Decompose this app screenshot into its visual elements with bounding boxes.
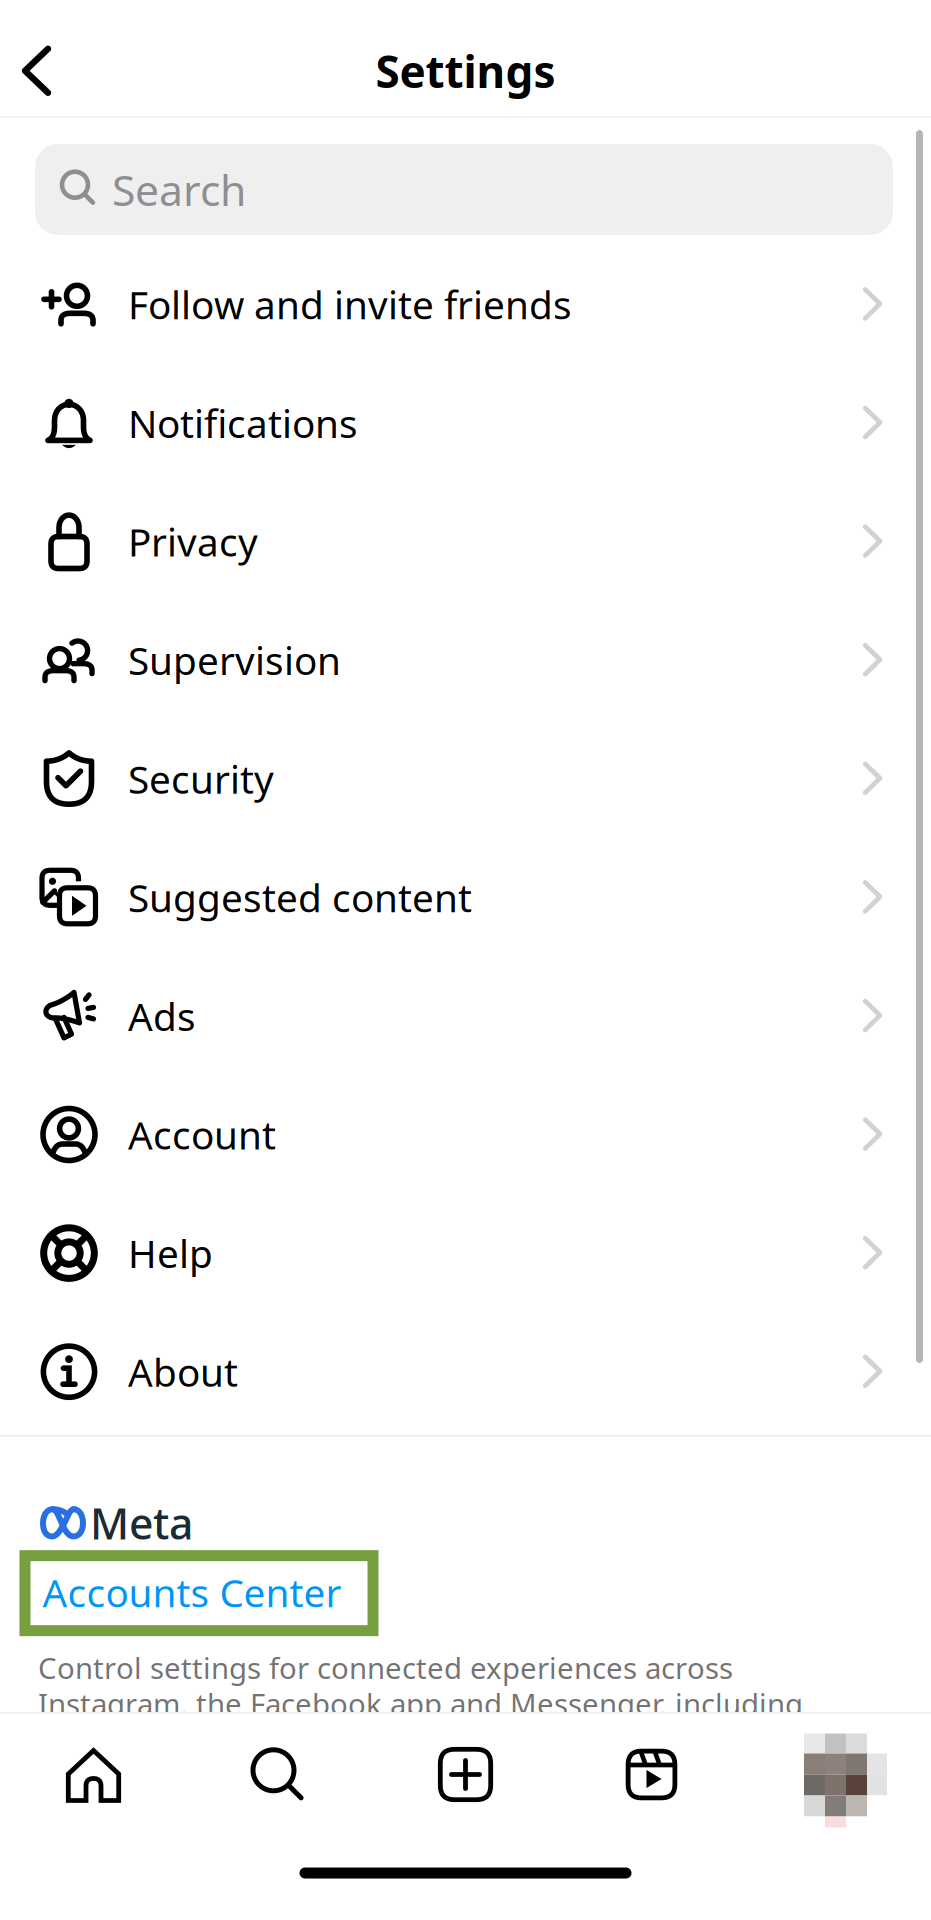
staticText: Help (128, 1227, 213, 1279)
staticText: Follow and invite friends (128, 279, 572, 330)
staticText: Meta (90, 1494, 193, 1551)
button[interactable]: Search (186, 1713, 372, 1825)
staticText: Instagram, the Facebook app and Messenge… (38, 1684, 803, 1723)
button[interactable]: Supervision (0, 601, 931, 719)
button[interactable]: Home (0, 1713, 186, 1825)
button[interactable]: Help (0, 1194, 931, 1312)
staticText: Privacy (128, 516, 258, 567)
staticText: Supervision (128, 634, 341, 686)
button[interactable]: Back (0, 16, 55, 97)
button[interactable]: Create (372, 1713, 558, 1825)
button[interactable]: Reels (558, 1713, 744, 1825)
button[interactable]: Follow and invite friends (0, 245, 931, 364)
button[interactable]: About (0, 1312, 931, 1431)
staticText: Account (128, 1109, 276, 1160)
staticText: Ads (128, 990, 196, 1041)
button[interactable]: Profile (744, 1713, 930, 1825)
staticText: Notifications (128, 397, 358, 448)
staticText: Accounts Center (42, 1566, 341, 1618)
staticText: Search (112, 161, 246, 218)
button[interactable]: Account (0, 1075, 931, 1194)
staticText: Suggested content (128, 872, 472, 923)
button[interactable]: Security (0, 719, 931, 838)
button[interactable]: Privacy (0, 482, 931, 601)
staticText: Settings (375, 42, 555, 100)
button[interactable]: Ads (0, 957, 931, 1075)
button[interactable]: Suggested content (0, 838, 931, 957)
button[interactable]: Notifications (0, 364, 931, 482)
button[interactable]: Accounts Center (0, 1551, 931, 1636)
staticText: About (128, 1346, 238, 1397)
staticText: Security (128, 753, 274, 804)
staticText: Control settings for connected experienc… (38, 1648, 733, 1687)
